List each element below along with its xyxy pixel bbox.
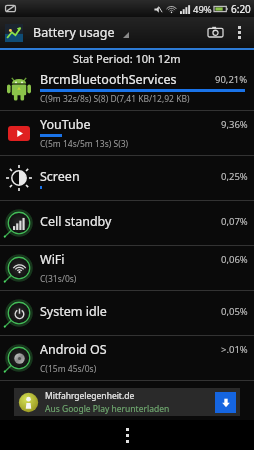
button[interactable]: Mitfahrgelegenheit.de xyxy=(14,388,240,416)
staticText: C(5m 14s/5m 13s) S(3) xyxy=(40,138,129,150)
staticText: Aus Google Play herunterladen xyxy=(45,403,170,415)
staticText: 0,05% xyxy=(221,305,248,318)
button[interactable]: Screenshot xyxy=(201,17,229,48)
staticText: Battery usage xyxy=(33,24,115,41)
staticText: 9,36% xyxy=(221,118,248,131)
button[interactable]: YouTube xyxy=(0,111,254,155)
staticText: Screen xyxy=(40,168,80,185)
staticText: WiFi xyxy=(40,251,65,268)
button[interactable]: WiFi xyxy=(0,246,254,290)
staticText: 6:20 xyxy=(231,2,251,16)
staticText: C(9m 32s/8s) S(8) D(7,41 KB/12,92 KB) xyxy=(40,93,190,105)
staticText: BrcmBluetoothServices xyxy=(40,71,177,88)
button[interactable]: Spinner dropdown xyxy=(119,28,129,38)
staticText: System idle xyxy=(40,303,107,320)
button[interactable]: Menu xyxy=(110,420,144,450)
staticText: 0,07% xyxy=(221,215,248,228)
staticText: YouTube xyxy=(40,116,91,133)
staticText: Stat Period: 10h 12m xyxy=(73,51,181,66)
button[interactable]: Cell standby xyxy=(0,201,254,245)
staticText: C(31s/0s) xyxy=(40,273,77,285)
button[interactable]: System idle xyxy=(0,291,254,335)
staticText: Android OS xyxy=(40,341,107,358)
staticText: 90,21% xyxy=(215,73,248,86)
button[interactable]: BrcmBluetoothServices xyxy=(0,66,254,110)
staticText: Mitfahrgelegenheit.de xyxy=(45,390,135,402)
staticText: >.01% xyxy=(221,343,248,356)
button[interactable]: Android OS xyxy=(0,336,254,380)
staticText: Cell standby xyxy=(40,213,112,230)
staticText: 0,25% xyxy=(221,170,248,183)
staticText: 0,06% xyxy=(221,253,248,266)
button[interactable]: More options xyxy=(229,17,249,48)
staticText: C(15m 45s/0s) xyxy=(40,363,97,375)
button[interactable]: Screen xyxy=(0,156,254,200)
staticText: 49% xyxy=(193,3,212,16)
button[interactable]: Download xyxy=(215,392,236,413)
